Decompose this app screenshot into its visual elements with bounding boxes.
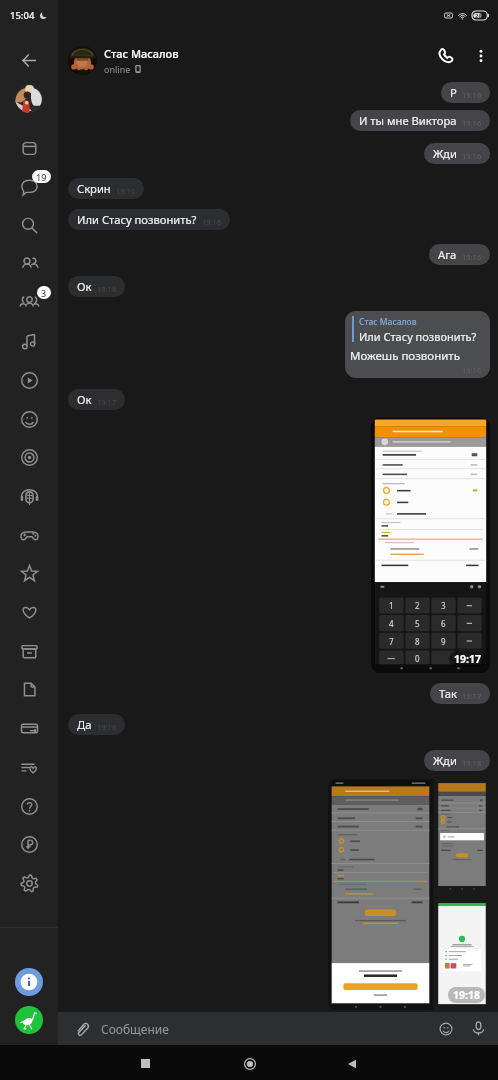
staticText: 19:16 xyxy=(202,217,222,227)
staticText: 4 xyxy=(389,618,394,629)
staticText: 19:16 xyxy=(97,722,117,732)
button[interactable]: Так xyxy=(430,683,490,704)
staticText: Ок xyxy=(77,279,92,294)
staticText: Р xyxy=(450,85,457,100)
button[interactable]: Help xyxy=(16,793,42,819)
button[interactable]: Feed xyxy=(16,754,42,780)
button[interactable]: VK Pay xyxy=(16,831,42,857)
button[interactable]: Call xyxy=(430,40,462,72)
staticText: 19:16 xyxy=(462,151,482,161)
staticText: 19:16 xyxy=(116,186,136,196)
staticText: 15:04 xyxy=(10,9,35,22)
button[interactable]: Search xyxy=(16,212,42,238)
button[interactable]: Ок xyxy=(68,389,125,410)
staticText: Сообщение xyxy=(101,1021,169,1037)
button[interactable]: More options xyxy=(465,40,497,72)
button[interactable]: Archive xyxy=(16,135,42,161)
staticText: Или Стасу позвонить? xyxy=(77,212,197,227)
staticText: 19:16 xyxy=(462,118,482,128)
button[interactable]: Жди xyxy=(424,143,490,164)
staticText: 19:16 xyxy=(462,365,482,375)
staticText: 19:16 xyxy=(97,284,117,294)
staticText: Можешь позвонить xyxy=(350,348,460,364)
button[interactable]: Или Стасу позвонить? xyxy=(68,209,230,230)
button[interactable]: Скрин xyxy=(68,178,144,199)
button[interactable]: Messages xyxy=(16,173,42,199)
staticText: 3 xyxy=(41,287,47,299)
button[interactable]: Back xyxy=(337,1049,366,1078)
staticText: 19:17 xyxy=(454,652,481,666)
button[interactable]: Emoji xyxy=(433,1016,458,1041)
staticText: 5 xyxy=(415,618,420,629)
staticText: 8 xyxy=(415,636,420,647)
staticText: 7 xyxy=(389,636,394,647)
button[interactable]: Saved xyxy=(16,638,42,664)
button[interactable]: Likes xyxy=(16,599,42,625)
staticText: Жди xyxy=(433,753,457,768)
button[interactable]: Music xyxy=(16,328,42,354)
staticText: 2 xyxy=(415,600,420,611)
button[interactable]: Bookmarks xyxy=(16,560,42,586)
button[interactable]: И ты мне Виктора xyxy=(350,110,490,131)
staticText: 19:17 xyxy=(462,691,482,701)
button[interactable]: Стас Масалов xyxy=(345,311,490,378)
staticText: online xyxy=(104,63,131,75)
button[interactable]: Stickers xyxy=(16,406,42,432)
button[interactable]: Back xyxy=(16,47,42,73)
staticText: Жди xyxy=(433,146,457,161)
button[interactable]: Ага xyxy=(429,244,490,265)
button[interactable]: Clips xyxy=(16,444,42,470)
staticText: Стас Масалов xyxy=(359,316,417,328)
button[interactable]: Жди xyxy=(424,750,490,771)
staticText: 28 xyxy=(475,12,482,20)
staticText: 19:18 xyxy=(462,758,482,768)
button[interactable]: Да xyxy=(68,714,125,735)
button[interactable]: Games xyxy=(16,522,42,548)
button[interactable]: Photo xyxy=(371,418,490,673)
staticText: Ага xyxy=(438,247,457,262)
staticText: 9 xyxy=(441,636,446,647)
staticText: 0 xyxy=(415,653,420,664)
staticText: Ок xyxy=(77,392,92,407)
staticText: 19:18 xyxy=(453,988,480,1002)
button[interactable]: Podcasts xyxy=(16,483,42,509)
button[interactable]: Profile xyxy=(15,85,43,113)
button[interactable]: Home xyxy=(235,1049,264,1078)
staticText: Или Стасу позвонить? xyxy=(359,329,477,344)
button[interactable]: Payments xyxy=(16,715,42,741)
staticText: 19:17 xyxy=(97,397,117,407)
staticText: Да xyxy=(77,717,92,732)
button[interactable]: Photos xyxy=(328,779,489,1010)
staticText: Так xyxy=(439,686,457,701)
staticText: 19:16 xyxy=(462,90,482,100)
staticText: Скрин xyxy=(77,181,111,196)
staticText: 19:16 xyxy=(462,252,482,262)
button[interactable]: Info xyxy=(15,968,43,996)
button[interactable]: Friends xyxy=(16,251,42,277)
button[interactable]: Video xyxy=(16,367,42,393)
staticText: И ты мне Виктора xyxy=(359,113,457,128)
button[interactable]: Voice message xyxy=(466,1016,491,1041)
button[interactable]: Р xyxy=(441,82,490,103)
button[interactable]: Groups xyxy=(16,289,42,315)
staticText: 19 xyxy=(36,171,47,183)
staticText: 3 xyxy=(441,600,446,611)
button[interactable]: Ostrich xyxy=(15,1006,43,1034)
button[interactable]: Settings xyxy=(16,870,42,896)
button[interactable]: Ок xyxy=(68,276,125,297)
button[interactable]: Recents xyxy=(131,1049,160,1078)
staticText: 1 xyxy=(389,600,394,611)
staticText: 6 xyxy=(441,618,446,629)
staticText: Стас Масалов xyxy=(104,46,179,61)
button[interactable]: Attach xyxy=(69,1016,94,1041)
button[interactable]: Documents xyxy=(16,676,42,702)
button[interactable]: Стас Масалов xyxy=(58,30,498,80)
